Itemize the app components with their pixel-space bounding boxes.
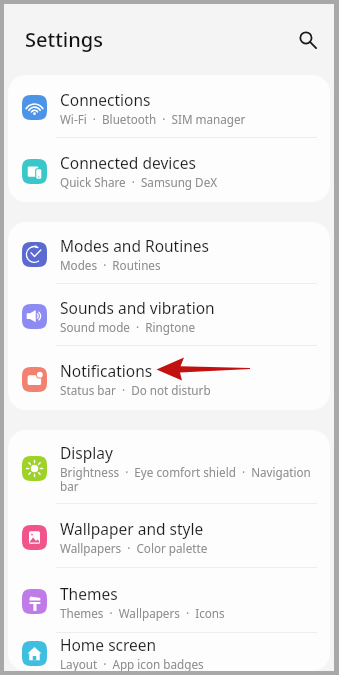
button[interactable]: Connections xyxy=(8,75,330,138)
staticText: Wi-Fi · Bluetooth · SIM manager xyxy=(60,111,246,127)
staticText: Modes · Routines xyxy=(60,257,161,273)
staticText: Connections xyxy=(60,89,151,110)
button[interactable]: Search xyxy=(292,24,324,56)
staticText: Home screen xyxy=(60,634,157,655)
staticText: Sound mode · Ringtone xyxy=(60,319,196,335)
button[interactable]: Display xyxy=(8,430,330,504)
button[interactable]: Sounds and vibration xyxy=(8,284,330,346)
staticText: Notifications xyxy=(60,360,153,381)
staticText: Display xyxy=(60,442,113,463)
staticText: Wallpapers · Color palette xyxy=(60,540,208,556)
staticText: Layout · App icon badges xyxy=(60,656,204,671)
staticText: Brightness · Eye comfort shield · Naviga… xyxy=(60,464,317,494)
button[interactable]: Home screen xyxy=(8,633,330,671)
staticText: Sounds and vibration xyxy=(60,297,215,318)
button[interactable]: Wallpaper and style xyxy=(8,504,330,568)
staticText: Themes · Wallpapers · Icons xyxy=(60,605,225,621)
button[interactable]: Themes xyxy=(8,568,330,633)
staticText: Connected devices xyxy=(60,152,196,173)
staticText: Status bar · Do not disturb xyxy=(60,382,211,398)
staticText: Themes xyxy=(60,583,118,604)
button[interactable]: Connected devices xyxy=(8,138,330,202)
button[interactable]: Notifications xyxy=(8,346,330,410)
staticText: Wallpaper and style xyxy=(60,518,204,539)
staticText: Modes and Routines xyxy=(60,235,209,256)
staticText: Settings xyxy=(25,26,103,53)
staticText: Quick Share · Samsung DeX xyxy=(60,174,218,190)
button[interactable]: Modes and Routines xyxy=(8,222,330,284)
